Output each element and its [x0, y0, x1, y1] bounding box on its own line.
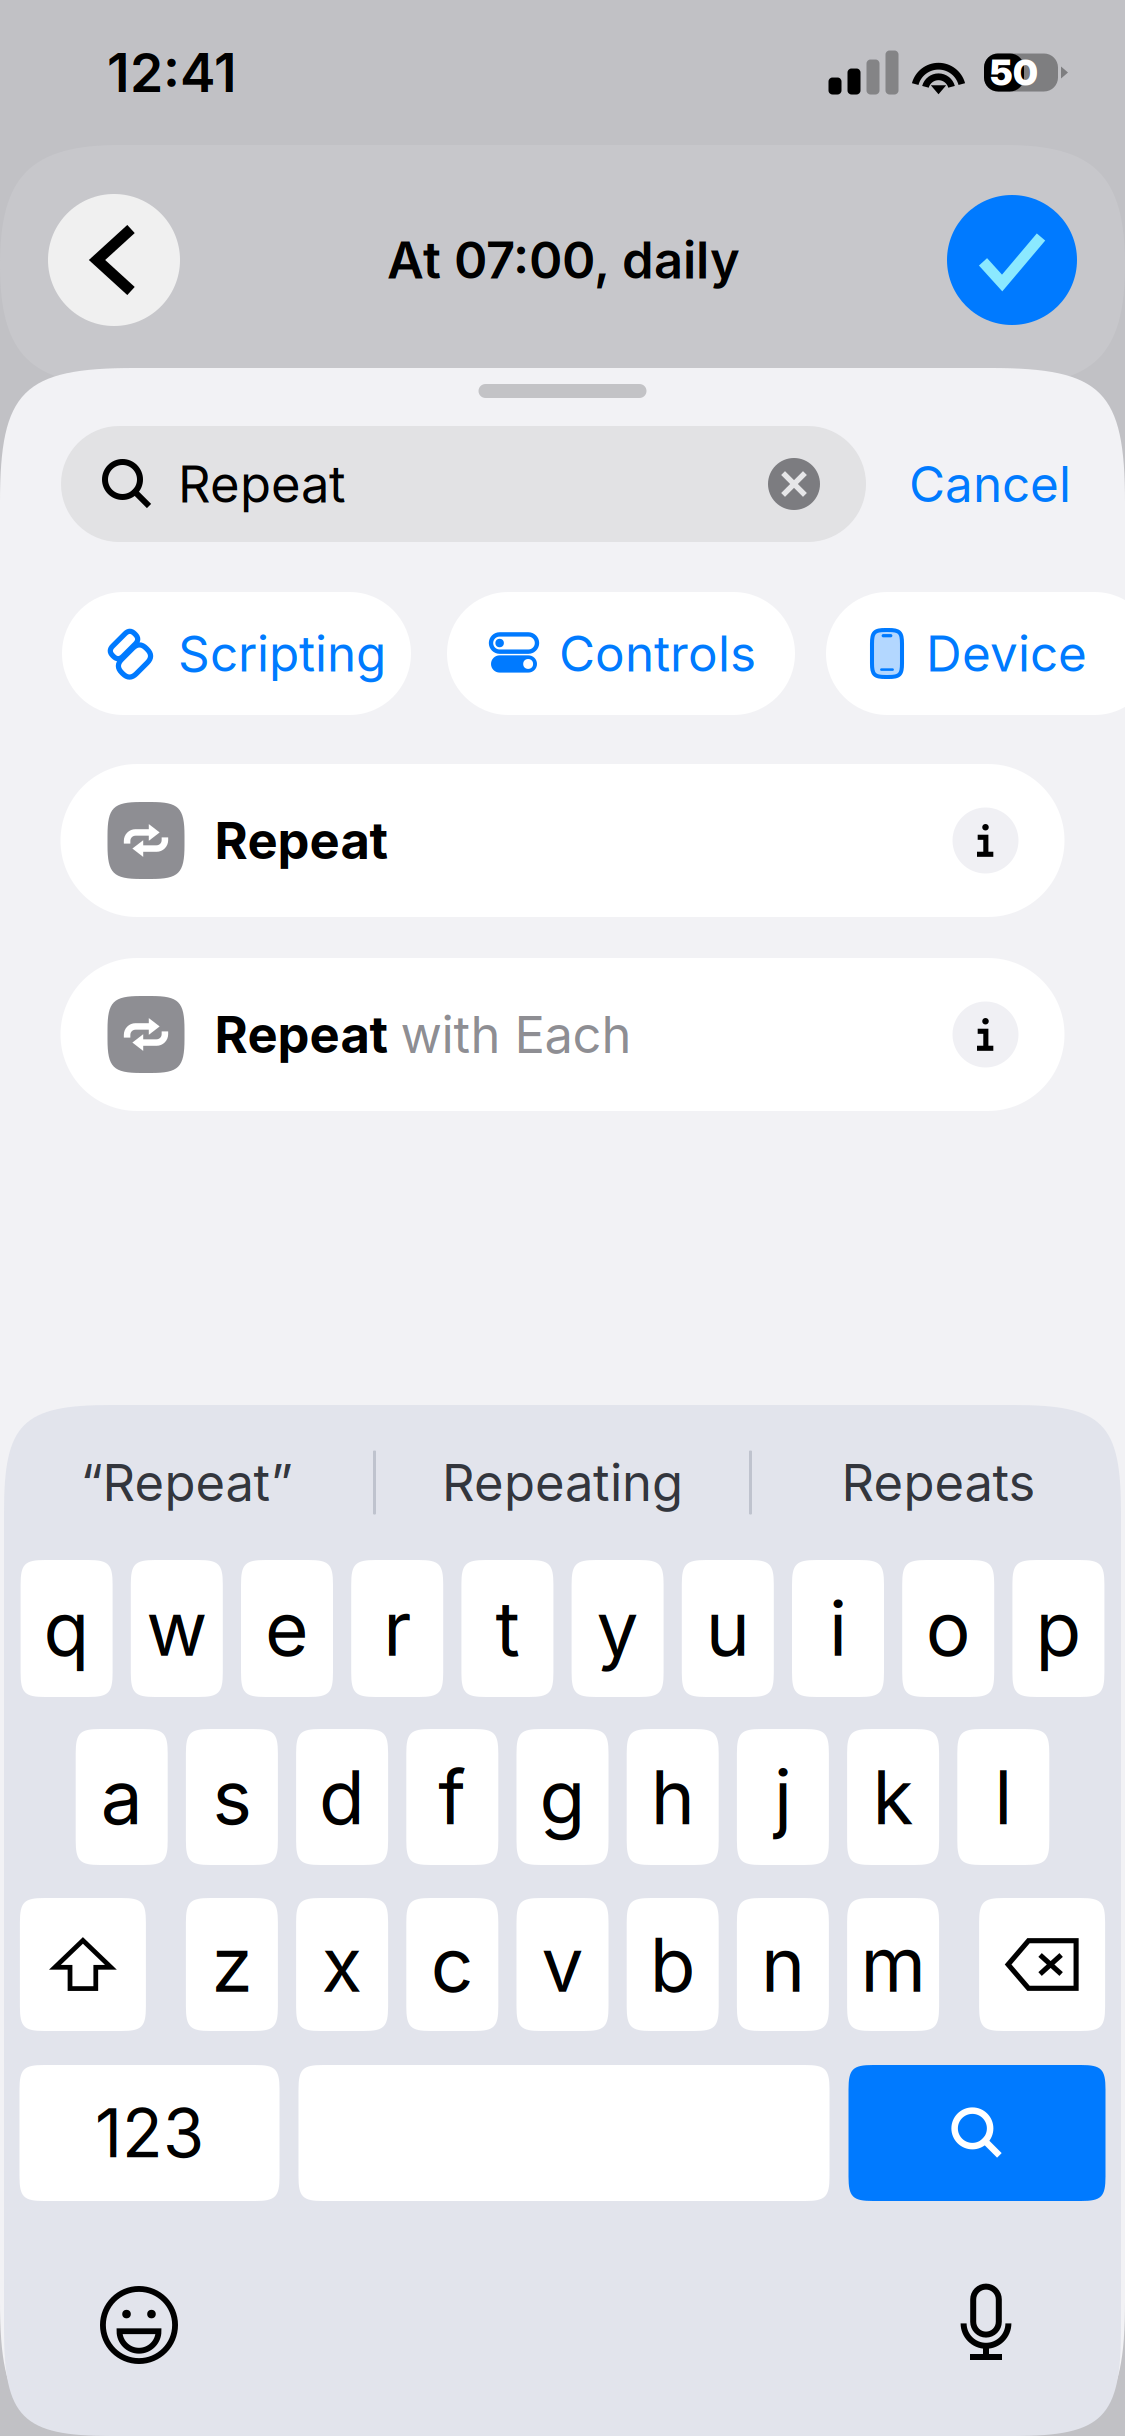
staticText: At 07:00, daily [387, 230, 740, 290]
staticText: Repeating [442, 1453, 683, 1512]
staticText: Repeats [841, 1453, 1035, 1512]
staticText: n [761, 1920, 805, 2009]
staticText: Device [926, 624, 1087, 683]
staticText: d [319, 1753, 365, 1841]
button[interactable]: u [682, 1560, 774, 1697]
button[interactable]: Delete [979, 1898, 1105, 2031]
button[interactable]: Back [48, 194, 180, 326]
button[interactable]: e [241, 1560, 333, 1697]
staticText: a [101, 1753, 143, 1841]
staticText: r [383, 1584, 411, 1673]
button[interactable]: f [406, 1729, 498, 1865]
staticText: 123 [95, 2094, 204, 2172]
button[interactable]: y [572, 1560, 664, 1697]
button[interactable]: Cancel [899, 426, 1081, 542]
staticText: y [597, 1584, 639, 1673]
staticText: Cancel [909, 455, 1071, 513]
staticText: o [926, 1584, 971, 1673]
button[interactable]: n [737, 1898, 829, 2031]
staticText: i [829, 1584, 847, 1673]
button[interactable]: d [296, 1729, 388, 1865]
staticText: p [1035, 1584, 1081, 1673]
staticText: e [265, 1584, 309, 1673]
button[interactable]: a [76, 1729, 168, 1865]
button[interactable]: c [406, 1898, 498, 2031]
button[interactable]: Controls [447, 592, 795, 715]
button[interactable]: Emoji [89, 2275, 189, 2375]
staticText: h [651, 1753, 695, 1841]
button[interactable]: Search [848, 2065, 1105, 2201]
button[interactable]: i [792, 1560, 884, 1697]
staticText: with Each [400, 1005, 631, 1064]
button[interactable]: Repeating [376, 1405, 749, 1560]
button[interactable]: Repeats [752, 1405, 1125, 1560]
staticText: c [431, 1920, 474, 2009]
staticText: s [212, 1753, 251, 1841]
button[interactable]: z [186, 1898, 278, 2031]
button[interactable]: Dictate [936, 2275, 1036, 2375]
staticText: “Repeat” [80, 1453, 292, 1512]
staticText: Repeat [214, 1005, 400, 1064]
button[interactable]: r [351, 1560, 443, 1697]
button[interactable]: Repeat [60, 764, 1064, 917]
button[interactable]: o [902, 1560, 994, 1697]
button[interactable]: p [1012, 1560, 1104, 1697]
button[interactable]: s [186, 1729, 278, 1865]
staticText: Repeat [214, 811, 388, 870]
button[interactable]: v [516, 1898, 608, 2031]
staticText: k [873, 1753, 914, 1841]
staticText: Scripting [178, 624, 386, 683]
button[interactable]: Scripting [62, 592, 411, 715]
staticText: g [539, 1753, 585, 1841]
staticText: x [322, 1920, 363, 2009]
staticText: t [495, 1584, 519, 1673]
button[interactable]: “Repeat” [0, 1405, 373, 1560]
button[interactable]: Done [947, 195, 1077, 325]
button[interactable]: h [627, 1729, 719, 1865]
staticText: 12:41 [107, 41, 237, 104]
staticText: j [774, 1753, 792, 1841]
button[interactable]: Shift [20, 1898, 146, 2031]
button[interactable]: Device [826, 592, 1125, 715]
staticText: Repeat [178, 454, 346, 514]
button[interactable]: j [737, 1729, 829, 1865]
button[interactable]: Repeat [61, 426, 866, 542]
staticText: b [650, 1920, 696, 2009]
staticText: 50 [990, 51, 1038, 94]
button[interactable]: w [131, 1560, 223, 1697]
button[interactable]: Repeat [60, 958, 1064, 1111]
staticText: u [706, 1584, 750, 1673]
staticText: Controls [559, 624, 756, 683]
staticText: z [211, 1920, 252, 2009]
staticText: m [861, 1920, 926, 2009]
button[interactable]: b [627, 1898, 719, 2031]
button[interactable]: l [957, 1729, 1049, 1865]
staticText: q [44, 1584, 90, 1673]
staticText: v [541, 1920, 583, 2009]
staticText: w [146, 1584, 207, 1673]
button[interactable]: t [461, 1560, 553, 1697]
button[interactable]: x [296, 1898, 388, 2031]
button[interactable]: q [21, 1560, 113, 1697]
staticText: l [994, 1753, 1012, 1841]
staticText: f [438, 1753, 466, 1841]
button[interactable]: 123 [19, 2065, 279, 2201]
button[interactable]: k [847, 1729, 939, 1865]
button[interactable]: m [847, 1898, 939, 2031]
button[interactable]: g [516, 1729, 608, 1865]
